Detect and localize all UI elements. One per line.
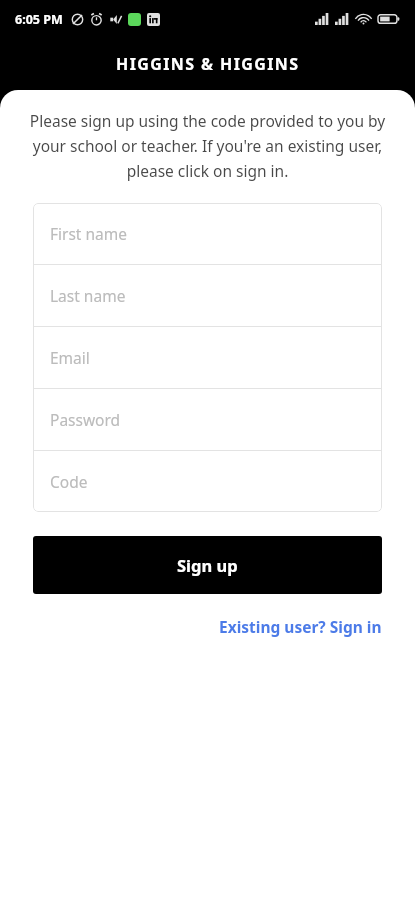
staticText: Last name bbox=[50, 285, 126, 306]
button[interactable]: Sign up bbox=[33, 536, 382, 594]
staticText: Email bbox=[50, 347, 90, 368]
button[interactable]: Last name bbox=[33, 265, 382, 326]
staticText: Password bbox=[50, 409, 121, 430]
button[interactable]: Email bbox=[33, 327, 382, 388]
staticText: Please sign up using the code provided t… bbox=[18, 110, 397, 181]
button[interactable]: First name bbox=[33, 203, 382, 264]
button[interactable]: Code bbox=[33, 451, 382, 512]
button[interactable]: Password bbox=[33, 389, 382, 450]
staticText: First name bbox=[50, 223, 128, 244]
staticText: Existing user? Sign in bbox=[219, 616, 382, 637]
staticText: Sign up bbox=[177, 554, 238, 576]
staticText: 6:05 PM bbox=[15, 11, 63, 28]
staticText: Code bbox=[50, 471, 88, 492]
staticText: HIGGINS & HIGGINS bbox=[116, 53, 300, 75]
button[interactable]: Existing user? Sign in bbox=[219, 608, 382, 645]
